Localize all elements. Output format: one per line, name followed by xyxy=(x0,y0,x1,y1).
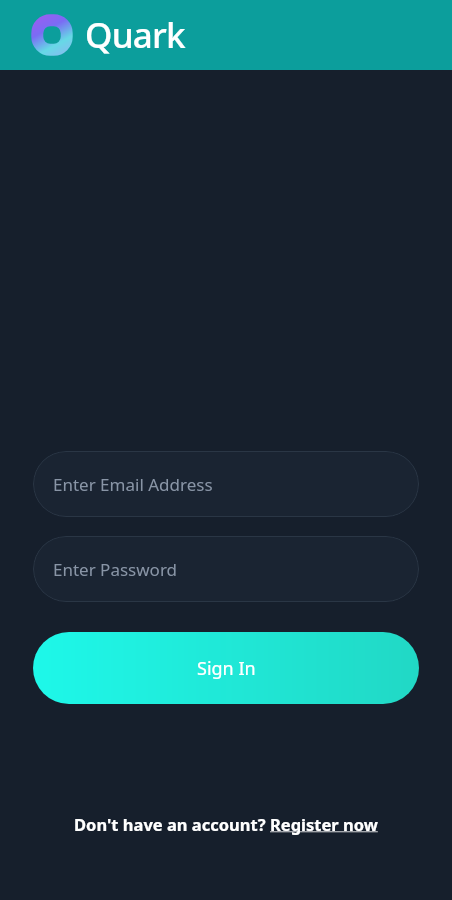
other: Quark logo xyxy=(29,12,75,58)
staticText: Quark xyxy=(85,11,185,59)
staticText: Register now xyxy=(270,813,378,835)
button[interactable]: Sign In xyxy=(33,632,419,704)
button[interactable]: Enter Password xyxy=(33,536,419,602)
button[interactable]: Enter Email Address xyxy=(33,451,419,517)
staticText: Sign In xyxy=(197,656,256,681)
staticText: Don't have an account? xyxy=(74,813,270,835)
staticText: Enter Email Address xyxy=(53,473,213,496)
button[interactable]: Don't have an account? xyxy=(64,810,388,838)
staticText: Enter Password xyxy=(53,558,178,581)
